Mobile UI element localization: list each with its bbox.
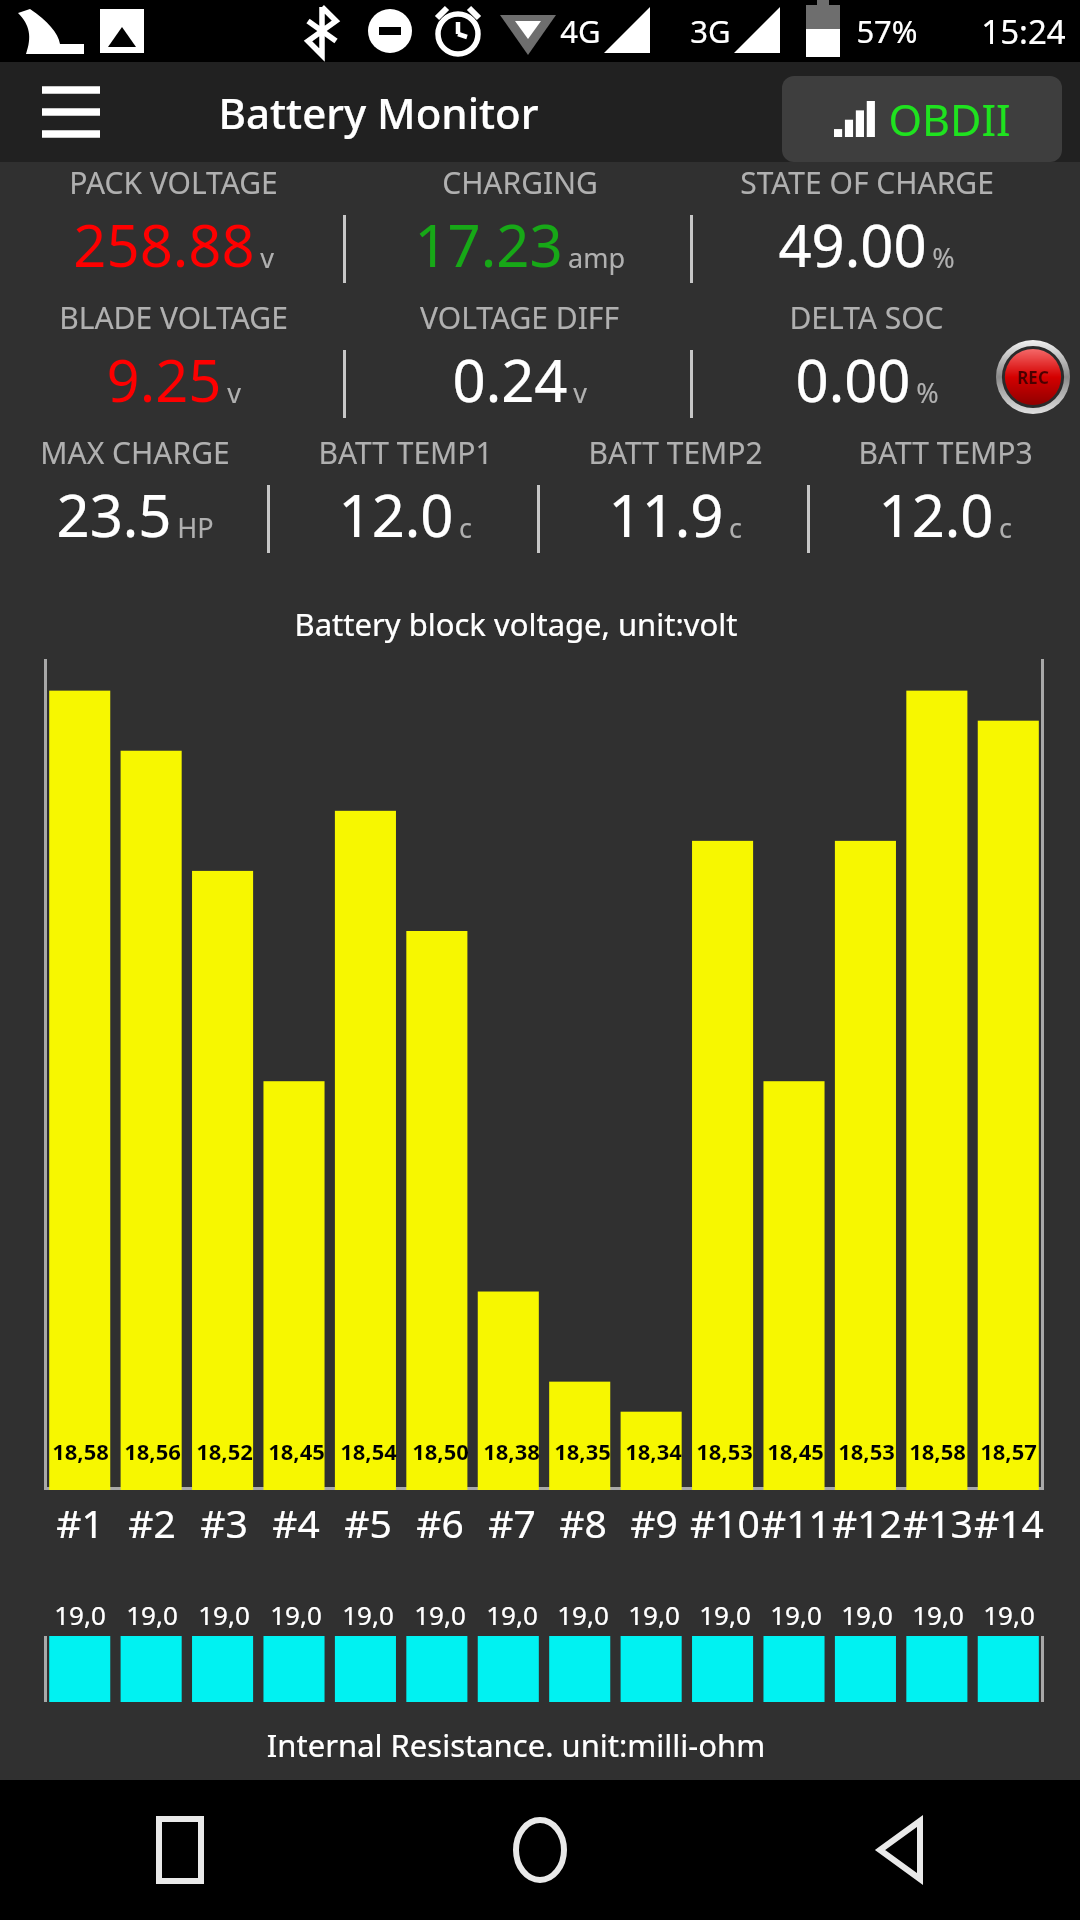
button[interactable]: BLADE VOLTAGE	[0, 297, 346, 432]
staticText: PACK VOLTAGE	[69, 162, 278, 203]
staticText: 12.0	[878, 475, 994, 554]
staticText: c	[729, 509, 742, 546]
staticText: amp	[568, 239, 625, 276]
staticText: 18,58	[909, 1436, 966, 1466]
staticText: Battery block voltage, unit:volt	[0, 603, 1032, 645]
staticText: v	[227, 374, 241, 411]
staticText: 0.00	[795, 340, 911, 419]
button[interactable]: CHARGING	[346, 162, 693, 297]
staticText: BATT TEMP2	[588, 432, 763, 473]
staticText: 9.25	[106, 340, 222, 419]
button[interactable]: BATT TEMP2	[540, 432, 810, 567]
staticText: #5	[344, 1496, 392, 1549]
staticText: 18,45	[767, 1436, 824, 1466]
staticText: 18,57	[980, 1436, 1037, 1466]
button[interactable]: MAX CHARGE	[0, 432, 270, 567]
button[interactable]: Record	[996, 340, 1070, 414]
staticText: 17.23	[414, 205, 563, 284]
staticText: 0.24	[452, 340, 568, 419]
staticText: 258.88	[73, 205, 255, 284]
button[interactable]: BATT TEMP3	[810, 432, 1080, 567]
staticText: #12	[832, 1496, 902, 1549]
button[interactable]: OBDII	[782, 76, 1062, 162]
staticText: #14	[974, 1496, 1044, 1549]
staticText: 57%	[856, 10, 918, 52]
staticText: 19,0	[983, 1597, 1035, 1632]
staticText: 19,0	[414, 1597, 466, 1632]
staticText: 18,34	[625, 1436, 682, 1466]
staticText: %	[916, 374, 939, 411]
staticText: c	[459, 509, 472, 546]
staticText: #3	[200, 1496, 248, 1549]
staticText: VOLTAGE DIFF	[420, 297, 619, 338]
staticText: HP	[177, 509, 214, 546]
button[interactable]: DELTA SOC	[693, 297, 1040, 432]
staticText: #10	[690, 1496, 760, 1549]
staticText: #13	[903, 1496, 973, 1549]
staticText: 19,0	[557, 1597, 609, 1632]
staticText: 19,0	[770, 1597, 822, 1632]
staticText: CHARGING	[442, 162, 598, 203]
staticText: STATE OF CHARGE	[740, 162, 994, 203]
staticText: %	[932, 239, 955, 276]
staticText: 18,58	[52, 1436, 109, 1466]
staticText: 19,0	[54, 1597, 106, 1632]
staticText: 19,0	[126, 1597, 178, 1632]
staticText: 11.9	[608, 475, 724, 554]
button[interactable]: PACK VOLTAGE	[0, 162, 346, 297]
staticText: 19,0	[198, 1597, 250, 1632]
staticText: #11	[761, 1496, 831, 1549]
staticText: BATT TEMP1	[318, 432, 493, 473]
staticText: BATT TEMP3	[858, 432, 1033, 473]
button[interactable]: Recent apps	[0, 1780, 360, 1920]
staticText: 18,56	[124, 1436, 181, 1466]
staticText: 3G	[690, 10, 731, 52]
staticText: DELTA SOC	[789, 297, 944, 338]
staticText: #9	[630, 1496, 678, 1549]
staticText: #8	[559, 1496, 607, 1549]
button[interactable]: Home	[360, 1780, 720, 1920]
staticText: #2	[128, 1496, 176, 1549]
button[interactable]: BATT TEMP1	[270, 432, 540, 567]
staticText: 49.00	[778, 205, 927, 284]
staticText: 18,54	[340, 1436, 397, 1466]
staticText: 18,50	[412, 1436, 469, 1466]
staticText: v	[260, 239, 274, 276]
staticText: 19,0	[342, 1597, 394, 1632]
staticText: #4	[272, 1496, 320, 1549]
staticText: 18,53	[696, 1436, 753, 1466]
staticText: 18,38	[483, 1436, 540, 1466]
button[interactable]: Open navigation menu	[40, 87, 102, 137]
staticText: 18,45	[268, 1436, 325, 1466]
staticText: 19,0	[912, 1597, 964, 1632]
staticText: 19,0	[699, 1597, 751, 1632]
staticText: #7	[488, 1496, 536, 1549]
staticText: 19,0	[270, 1597, 322, 1632]
staticText: 23.5	[56, 475, 172, 554]
staticText: OBDII	[888, 90, 1011, 149]
staticText: 18,53	[838, 1436, 895, 1466]
staticText: c	[999, 509, 1012, 546]
staticText: 4G	[560, 10, 601, 52]
staticText: #6	[416, 1496, 464, 1549]
staticText: 15:24	[981, 9, 1066, 54]
staticText: #1	[56, 1496, 104, 1549]
staticText: BLADE VOLTAGE	[59, 297, 288, 338]
staticText: 18,52	[196, 1436, 253, 1466]
staticText: Internal Resistance. unit:milli-ohm	[0, 1724, 1032, 1766]
staticText: 19,0	[628, 1597, 680, 1632]
button[interactable]: VOLTAGE DIFF	[346, 297, 693, 432]
staticText: 12.0	[338, 475, 454, 554]
staticText: 19,0	[841, 1597, 893, 1632]
staticText: 18,35	[554, 1436, 611, 1466]
button[interactable]: STATE OF CHARGE	[693, 162, 1040, 297]
staticText: v	[573, 374, 587, 411]
staticText: Battery Monitor	[218, 84, 539, 141]
staticText: 19,0	[486, 1597, 538, 1632]
staticText: MAX CHARGE	[40, 432, 230, 473]
button[interactable]: Back	[720, 1780, 1080, 1920]
staticText: REC	[1017, 366, 1049, 389]
